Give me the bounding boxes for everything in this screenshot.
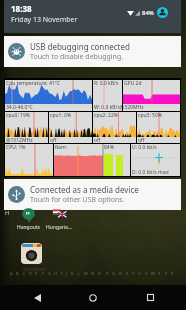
button[interactable]: User profile bbox=[157, 7, 168, 18]
staticText: F bbox=[42, 271, 45, 276]
staticText: 84% bbox=[142, 9, 154, 17]
staticText: Q bbox=[112, 271, 116, 276]
staticText: Connected as a media device bbox=[30, 184, 139, 195]
button[interactable]: Hungaria... bbox=[44, 208, 74, 231]
staticText: off bbox=[50, 137, 57, 144]
staticText: Cpu temperature: 41°C bbox=[6, 80, 60, 87]
staticText: U bbox=[138, 271, 141, 276]
staticText: E bbox=[35, 271, 38, 276]
staticText: Hungaria... bbox=[46, 224, 72, 231]
button[interactable]: Connected as a media device bbox=[4, 179, 181, 210]
button[interactable]: Back bbox=[17, 285, 57, 310]
staticText: N bbox=[91, 271, 95, 276]
staticText: 18:38 bbox=[11, 3, 32, 14]
staticText: cpu3: 50% bbox=[138, 112, 162, 119]
staticText: Friday 13 November bbox=[11, 15, 78, 25]
button[interactable]: Hangouts bbox=[13, 208, 43, 231]
staticText: M bbox=[84, 271, 88, 276]
staticText: off bbox=[138, 137, 145, 144]
staticText: @1512MHz bbox=[6, 137, 33, 144]
staticText: X bbox=[158, 271, 161, 276]
button[interactable]: Recent apps bbox=[130, 285, 170, 310]
staticText: A bbox=[10, 271, 13, 276]
staticText: D: 0.0 kb/s max: bbox=[132, 169, 170, 176]
staticText: T bbox=[132, 271, 135, 276]
staticText: V bbox=[145, 271, 148, 276]
staticText: off bbox=[94, 137, 101, 144]
staticText: B bbox=[16, 271, 19, 276]
staticText: Touch to disable debugging. bbox=[30, 52, 124, 62]
staticText: cpu2: 22% bbox=[94, 112, 118, 119]
staticText: cpu0: 19% bbox=[6, 112, 30, 119]
staticText: GPU 2d bbox=[124, 80, 142, 87]
staticText: Touch for other USB options. bbox=[30, 195, 125, 205]
staticText: Y bbox=[165, 271, 168, 276]
staticText: Hangouts bbox=[17, 224, 40, 231]
staticText: O bbox=[98, 271, 102, 276]
staticText: H bbox=[5, 209, 10, 217]
staticText: W: 0.0 kB/s@320MHz bbox=[94, 104, 144, 111]
staticText: K bbox=[71, 271, 74, 276]
staticText: Instagram bbox=[22, 266, 47, 273]
staticText: USB debugging connected bbox=[30, 41, 130, 52]
staticText: P bbox=[106, 271, 109, 276]
staticText: D bbox=[29, 271, 32, 276]
staticText: L bbox=[78, 271, 81, 276]
button[interactable]: Instagram bbox=[21, 243, 42, 264]
staticText: 84% bbox=[104, 144, 114, 151]
staticText: R bbox=[119, 271, 122, 276]
staticText: Ram: bbox=[55, 144, 67, 151]
staticText: W bbox=[151, 271, 155, 276]
staticText: cpu1: 0% bbox=[50, 112, 72, 119]
staticText: 34.0-46.0°C bbox=[6, 104, 33, 111]
staticText: H bbox=[54, 271, 57, 276]
staticText: S bbox=[126, 271, 129, 276]
staticText: Z bbox=[171, 271, 174, 276]
staticText: C bbox=[23, 271, 26, 276]
button[interactable]: Home bbox=[73, 285, 113, 310]
staticText: J bbox=[66, 271, 68, 276]
staticText: U: 0.0 kb/s bbox=[132, 144, 157, 151]
staticText: G bbox=[48, 271, 51, 276]
staticText: R: 0.0 kB/s bbox=[94, 80, 119, 87]
button[interactable]: System monitor widget bbox=[4, 78, 181, 177]
staticText: I bbox=[61, 271, 63, 276]
staticText: CPU: 1% bbox=[6, 144, 26, 151]
button[interactable]: USB debugging connected bbox=[4, 36, 181, 67]
